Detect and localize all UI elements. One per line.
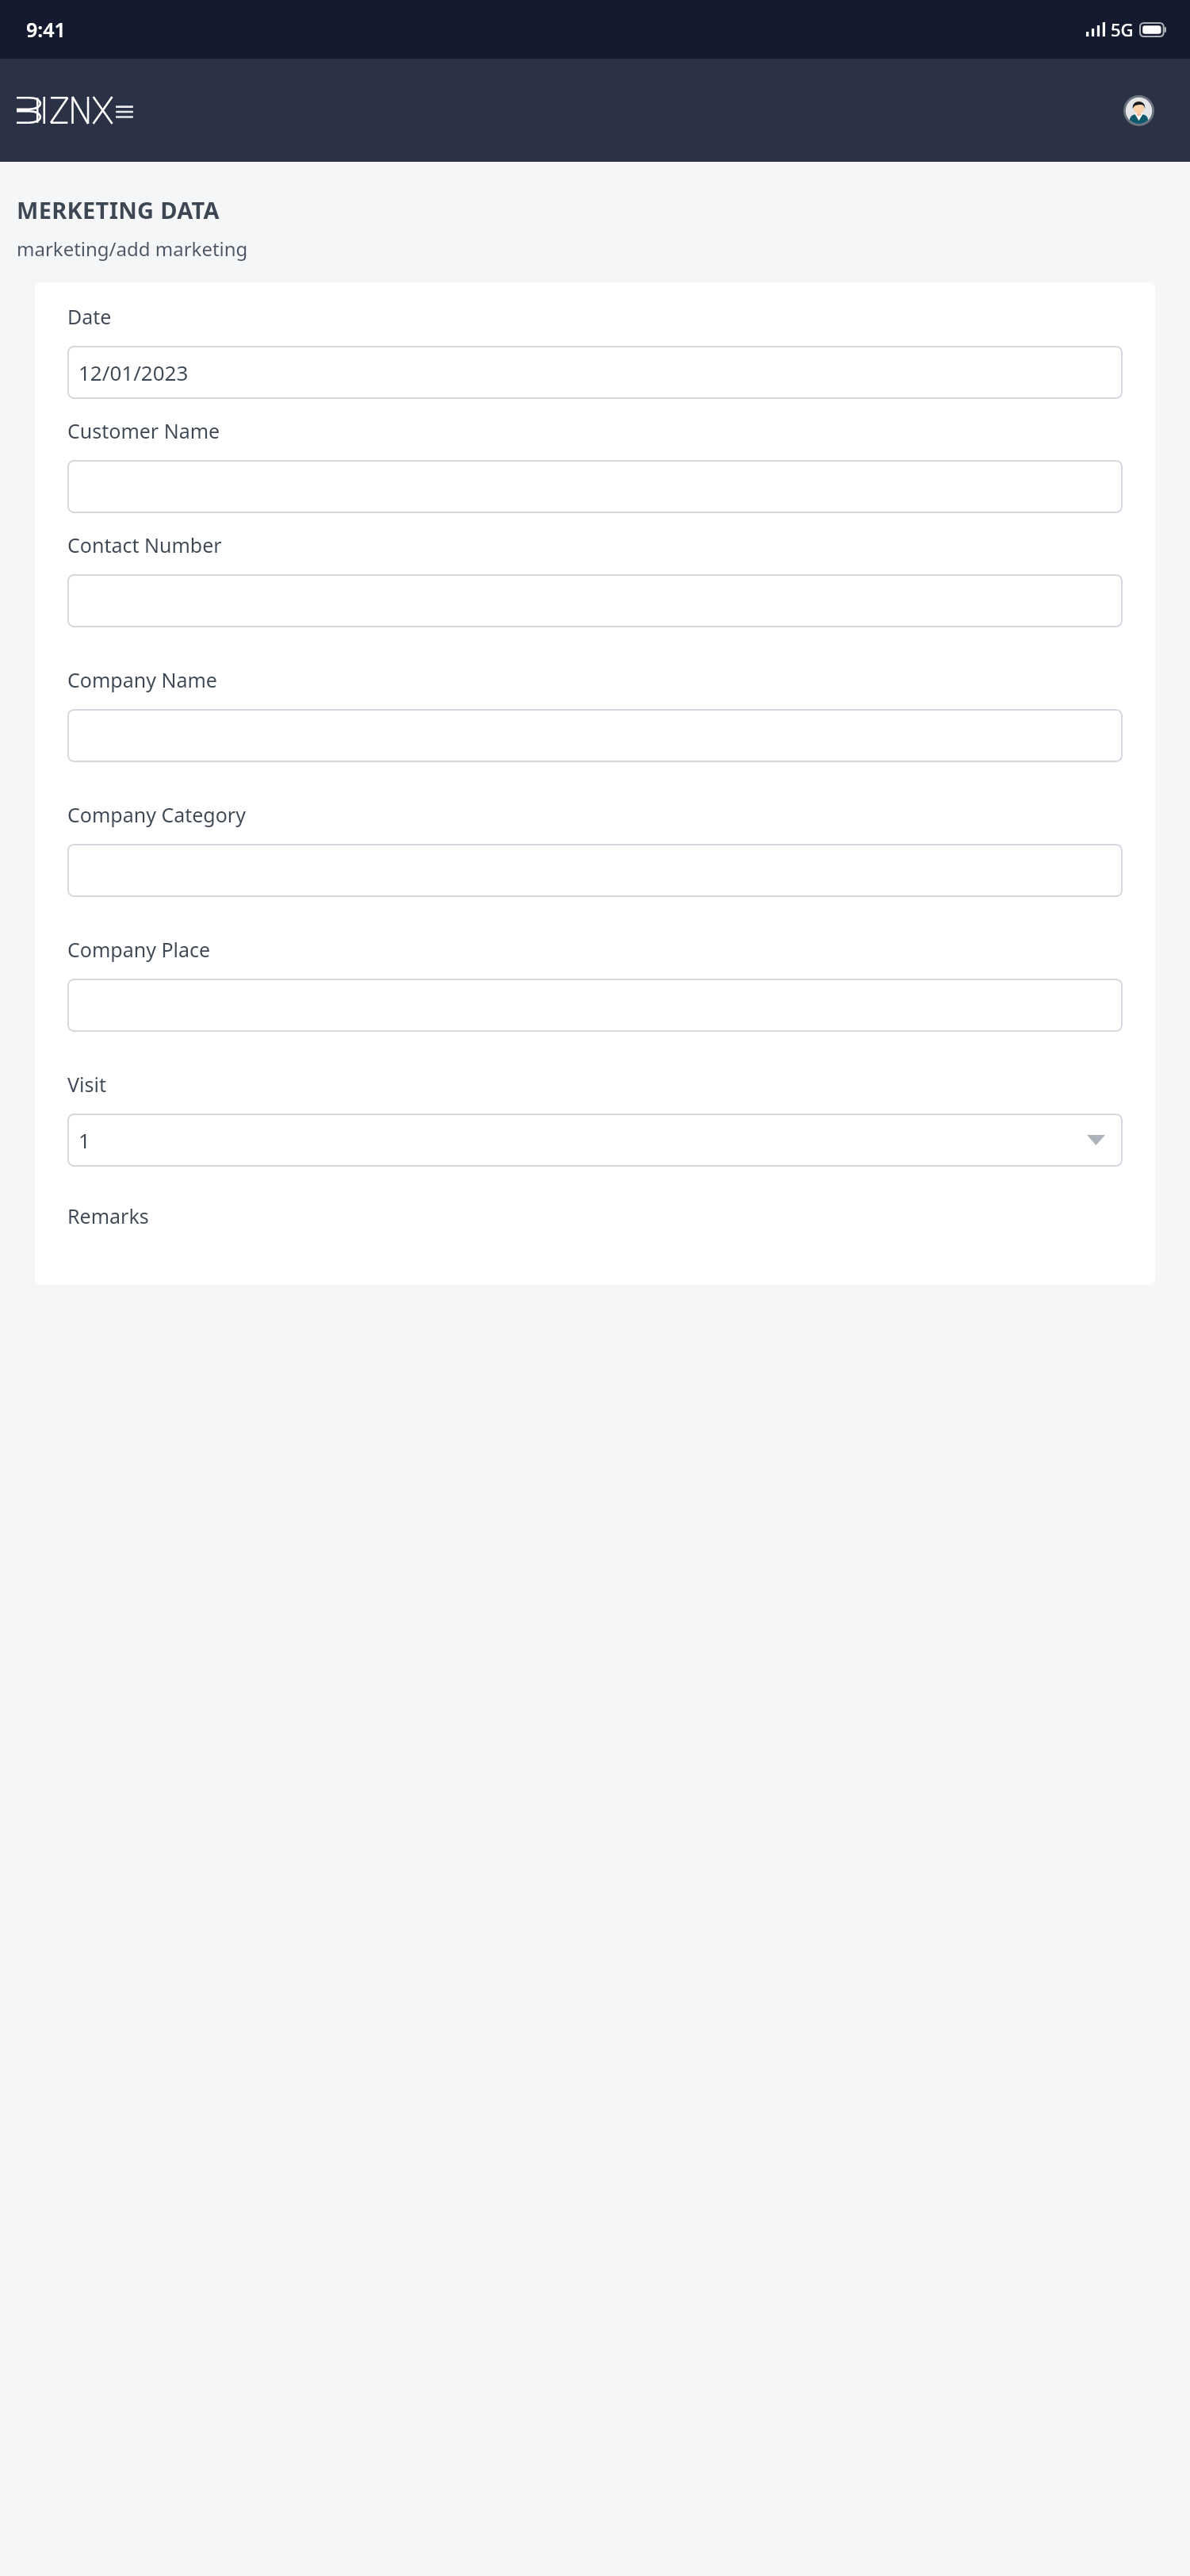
staticText: 12/01/2023 — [78, 358, 189, 386]
staticText: Remarks — [67, 1202, 149, 1229]
staticText: Contact Number — [67, 531, 222, 558]
staticText: 9:41 — [26, 16, 66, 43]
button[interactable]: 1 — [67, 1114, 1123, 1167]
button[interactable] — [67, 709, 1123, 762]
button[interactable] — [67, 979, 1123, 1032]
staticText: Customer Name — [67, 417, 220, 444]
button[interactable] — [67, 460, 1123, 513]
other: Select visit — [1087, 1135, 1105, 1145]
button[interactable]: Profile — [1123, 95, 1154, 126]
staticText: Company Name — [67, 666, 217, 693]
staticText: Visit — [67, 1071, 106, 1098]
staticText: 1 — [78, 1126, 90, 1154]
staticText: MERKETING DATA — [17, 194, 220, 225]
button[interactable] — [67, 844, 1123, 897]
staticText: marketing/add marketing — [17, 236, 248, 262]
staticText: Company Place — [67, 936, 211, 963]
staticText: Date — [67, 303, 112, 330]
staticText: 5G — [1111, 17, 1134, 41]
button[interactable] — [67, 574, 1123, 627]
button[interactable]: BIZNX menu — [17, 97, 133, 124]
button[interactable]: 12/01/2023 — [67, 346, 1123, 399]
staticText: Company Category — [67, 801, 246, 828]
